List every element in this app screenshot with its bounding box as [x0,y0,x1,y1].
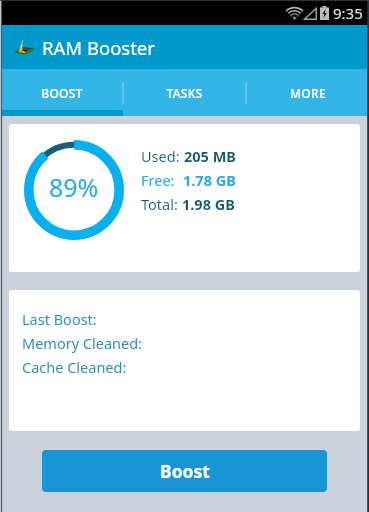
staticText: 1.78 GB [183,170,236,190]
staticText: Boost [160,459,210,483]
button[interactable]: RAM Booster home [0,25,369,69]
staticText: Total: [141,194,182,214]
button[interactable]: TASKS [123,69,246,116]
button[interactable]: MORE [246,69,369,116]
button[interactable]: 89% [9,124,360,272]
staticText: 1.98 GB [182,194,235,214]
staticText: Used: [141,146,184,166]
button[interactable]: BOOST [0,69,123,116]
staticText: MORE [290,85,326,101]
staticText: BOOST [41,85,83,101]
staticText: Free: [141,170,183,190]
staticText: TASKS [166,85,203,101]
button[interactable]: Last Boost: [9,290,360,431]
staticText: Memory Cleaned: [22,333,142,353]
staticText: Cache Cleaned: [22,357,127,377]
staticText: Last Boost: [22,309,97,329]
staticText: 9:35 [333,3,363,23]
button[interactable]: Boost [42,450,327,492]
staticText: 89% [49,170,99,204]
staticText: 205 MB [184,146,236,166]
staticText: RAM Booster [42,35,155,60]
